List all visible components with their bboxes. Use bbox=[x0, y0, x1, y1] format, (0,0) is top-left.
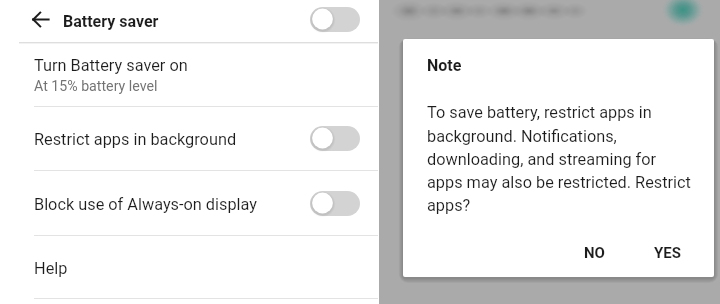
staticText: At 15% battery level bbox=[34, 78, 158, 95]
button[interactable]: Toggle off bbox=[310, 126, 360, 151]
button[interactable]: Restrict apps in background bbox=[0, 106, 379, 170]
staticText: Note bbox=[427, 56, 462, 75]
staticText: Turn Battery saver on bbox=[34, 56, 188, 75]
staticText: Battery saver bbox=[63, 12, 159, 31]
staticText: YES bbox=[654, 244, 681, 262]
staticText: Help bbox=[34, 259, 68, 278]
staticText: NO bbox=[584, 244, 605, 262]
button[interactable]: Back bbox=[23, 2, 57, 36]
button[interactable]: YES bbox=[642, 236, 693, 270]
button[interactable]: Toggle off bbox=[310, 191, 360, 216]
button[interactable]: Help bbox=[0, 236, 379, 299]
button[interactable]: Toggle off bbox=[310, 7, 360, 32]
staticText: Restrict apps in background bbox=[34, 130, 237, 149]
staticText: To save battery, restrict apps in backgr… bbox=[427, 103, 693, 215]
button[interactable]: NO bbox=[572, 236, 617, 270]
button[interactable]: Block use of Always-on display bbox=[0, 171, 379, 235]
staticText: Block use of Always-on display bbox=[34, 195, 258, 214]
button[interactable]: Turn Battery saver on bbox=[0, 43, 379, 106]
